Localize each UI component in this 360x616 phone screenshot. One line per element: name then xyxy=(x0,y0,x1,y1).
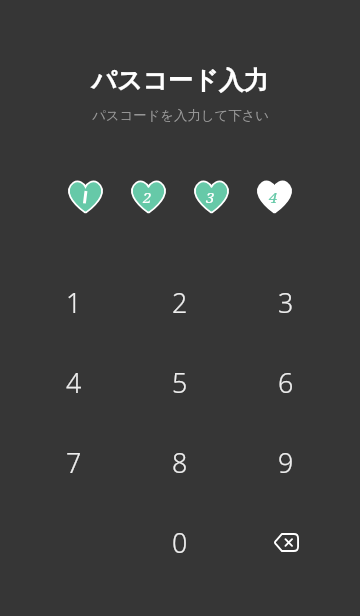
button[interactable]: 0 xyxy=(127,502,233,582)
staticText: 5 xyxy=(172,364,188,401)
staticText: 6 xyxy=(278,364,294,401)
staticText: 3 xyxy=(278,284,294,321)
staticText: 8 xyxy=(172,444,188,481)
staticText: 7 xyxy=(66,444,82,481)
staticText: 3 xyxy=(206,187,215,207)
button[interactable]: Backspace xyxy=(233,502,339,582)
button[interactable]: 3 xyxy=(233,262,339,342)
staticText: 0 xyxy=(172,524,188,561)
button[interactable]: 9 xyxy=(233,422,339,502)
staticText: パスコード入力 xyxy=(91,65,269,96)
button[interactable]: 2 xyxy=(127,262,233,342)
staticText: 4 xyxy=(269,187,278,207)
button[interactable]: 5 xyxy=(127,342,233,422)
button[interactable]: 8 xyxy=(127,422,233,502)
staticText: 1 xyxy=(66,284,82,321)
staticText: 2 xyxy=(143,187,152,207)
staticText: 2 xyxy=(172,284,188,321)
staticText: パスコードを入力して下さい xyxy=(92,107,269,124)
staticText: 4 xyxy=(66,364,82,401)
button[interactable]: 4 xyxy=(21,342,127,422)
button[interactable]: 6 xyxy=(233,342,339,422)
staticText: 9 xyxy=(278,444,294,481)
button[interactable]: 7 xyxy=(21,422,127,502)
button[interactable]: 1 xyxy=(21,262,127,342)
